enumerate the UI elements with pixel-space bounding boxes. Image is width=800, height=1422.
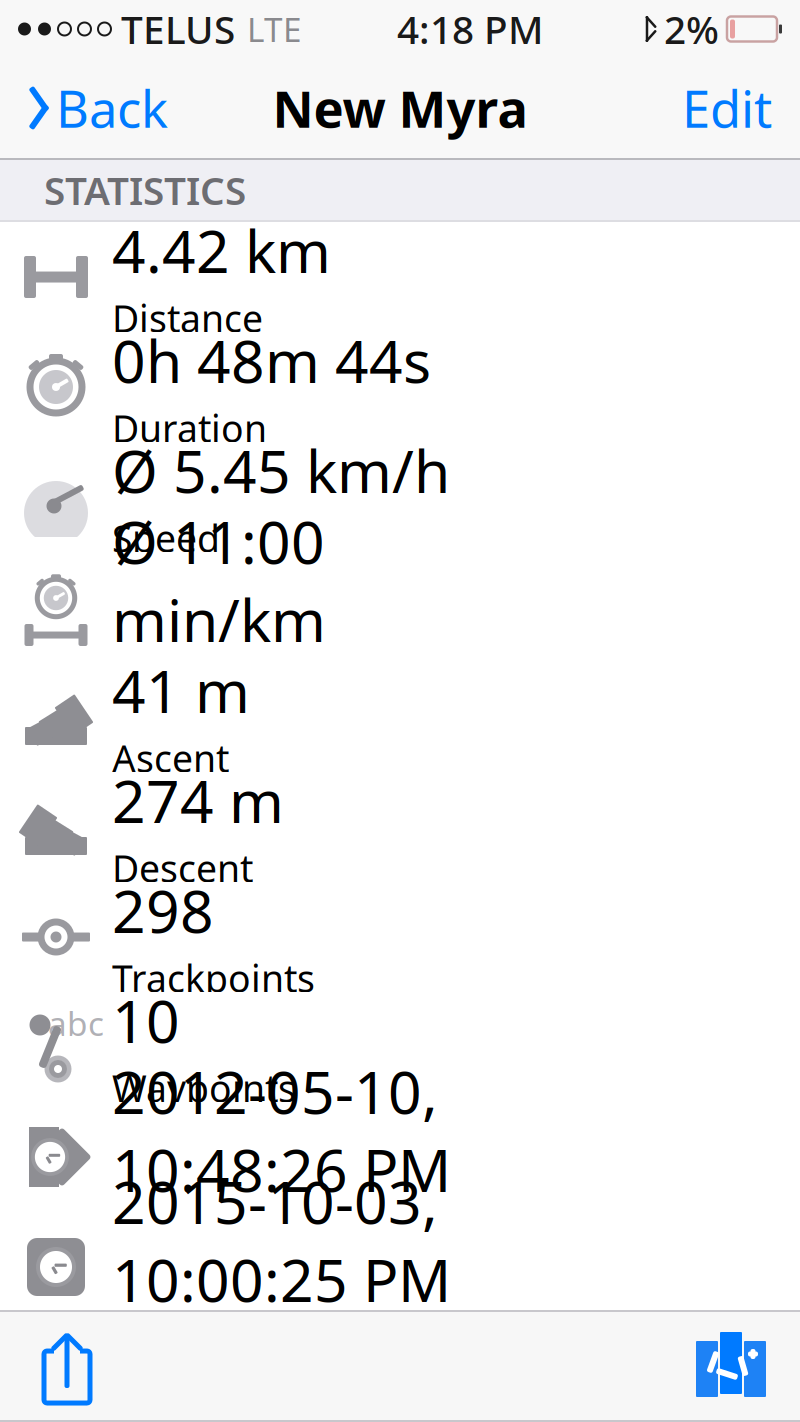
button[interactable]: Ø 5.45 km/h — [0, 442, 800, 552]
staticText: TELUS — [121, 3, 235, 55]
button[interactable]: Ø 11:00 min/km — [0, 552, 800, 662]
staticText: Duration — [112, 403, 267, 453]
staticText: Back — [56, 74, 168, 142]
button[interactable]: Show on map — [684, 1331, 778, 1401]
button[interactable]: 0h 48m 44s — [0, 332, 800, 442]
staticText: Trackpoints — [112, 953, 315, 1003]
button[interactable]: abc — [0, 992, 800, 1102]
button[interactable]: 41 m — [0, 662, 800, 772]
staticText: 298 — [112, 871, 214, 949]
staticText: 2012-05-10, 10:48:26 PM — [112, 1052, 451, 1208]
button[interactable]: Back — [18, 66, 178, 150]
staticText: Pace — [112, 662, 195, 712]
button[interactable]: 4.42 km — [0, 222, 800, 332]
button[interactable]: 274 m — [0, 772, 800, 882]
staticText: Speed — [112, 513, 220, 563]
staticText: 0h 48m 44s — [112, 321, 431, 399]
staticText: 4.42 km — [112, 211, 331, 289]
staticText: 2% — [664, 3, 719, 55]
staticText: STATISTICS — [44, 164, 246, 216]
staticText: 4:18 PM — [397, 3, 543, 55]
staticText: Distance — [112, 293, 263, 343]
staticText: abc — [48, 1001, 104, 1045]
staticText: New Myra — [272, 74, 527, 142]
staticText: Start — [112, 1212, 194, 1262]
button[interactable]: 298 — [0, 882, 800, 992]
staticText: Ø 5.45 km/h — [112, 431, 450, 509]
button[interactable]: Edit — [672, 66, 782, 150]
button[interactable]: Share — [22, 1324, 112, 1408]
staticText: Ø 11:00 min/km — [112, 502, 326, 658]
button[interactable]: 2015-10-03, 10:00:25 PM — [0, 1212, 800, 1322]
staticText: Waypoints — [112, 1063, 296, 1113]
staticText: Ascent — [112, 733, 229, 783]
staticText: 41 m — [112, 651, 250, 729]
staticText: 274 m — [112, 761, 284, 839]
button[interactable]: 2012-05-10, 10:48:26 PM — [0, 1102, 800, 1212]
staticText: 10 — [112, 981, 180, 1059]
staticText: 2015-10-03, 10:00:25 PM — [112, 1162, 451, 1318]
staticText: Descent — [112, 843, 253, 893]
staticText: LTE — [247, 7, 302, 51]
staticText: Edit — [682, 74, 772, 142]
